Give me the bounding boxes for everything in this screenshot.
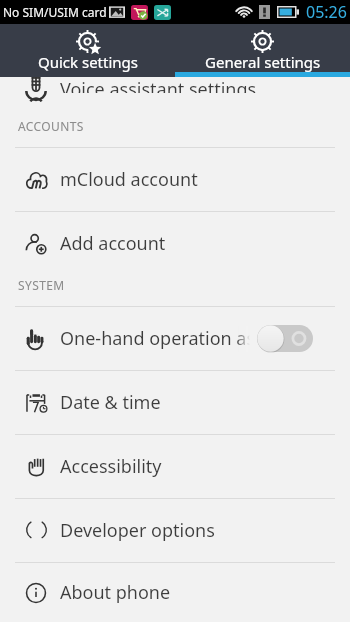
staticText: Accessibility [60,454,162,479]
staticText: General settings [205,52,321,72]
button[interactable]: Date & time [0,371,350,434]
button[interactable]: Accessibility [0,435,350,498]
button[interactable]: mCloud account [0,148,350,211]
staticText: mCloud account [60,167,198,192]
staticText: Developer options [60,518,215,543]
button[interactable]: Add account [0,212,350,275]
button[interactable]: Voice assistant settings [0,77,350,116]
staticText: SYSTEM [18,277,65,293]
staticText: No SIM/USIM card [3,4,107,20]
staticText: 05:26 [306,1,347,23]
staticText: One-hand operation assistance [60,326,250,351]
staticText: Add account [60,231,166,256]
staticText: Quick settings [38,52,138,72]
button[interactable]: Developer options [0,499,350,562]
staticText: Voice assistant settings [60,77,257,93]
button[interactable]: Quick settings [0,24,175,77]
button[interactable]: One-hand operation assistance [0,307,350,370]
staticText: ACCOUNTS [18,118,84,134]
button[interactable]: About phone [0,563,350,622]
staticText: About phone [60,580,171,605]
button[interactable]: General settings [175,24,350,77]
staticText: Date & time [60,390,161,415]
